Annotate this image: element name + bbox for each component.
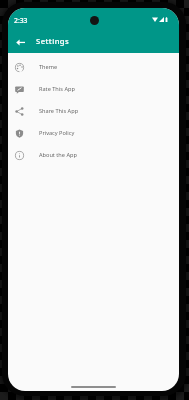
button[interactable]: Theme bbox=[8, 56, 179, 78]
button[interactable]: Back bbox=[13, 35, 28, 50]
staticText: Rate This App bbox=[39, 85, 75, 93]
button[interactable]: Share This App bbox=[8, 100, 179, 122]
staticText: Settings bbox=[36, 36, 70, 46]
staticText: Share This App bbox=[39, 107, 79, 115]
staticText: About the App bbox=[39, 151, 77, 159]
button[interactable]: Rate This App bbox=[8, 78, 179, 100]
staticText: Theme bbox=[39, 63, 58, 71]
button[interactable]: About the App bbox=[8, 144, 179, 166]
staticText: Privacy Policy bbox=[39, 129, 75, 137]
staticText: 2:33 bbox=[14, 16, 28, 25]
button[interactable]: Privacy Policy bbox=[8, 122, 179, 144]
